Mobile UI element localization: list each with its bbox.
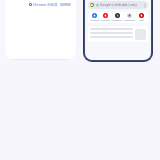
staticText: Facebook	[90, 19, 100, 22]
button[interactable]: Facebook	[89, 13, 100, 22]
button[interactable]: Wikipedia	[123, 13, 135, 22]
button[interactable]: Google search	[88, 1, 148, 9]
staticText: Chrome 浏览器	[33, 2, 58, 7]
button[interactable]: CNN	[135, 13, 147, 22]
button[interactable]: Google search	[85, 0, 151, 60]
other: Google search	[90, 3, 94, 7]
other: More options	[144, 3, 146, 8]
button[interactable]: YouTube	[100, 13, 111, 22]
button[interactable]	[88, 26, 148, 42]
button[interactable]: Amazon.com	[111, 13, 123, 22]
staticText: Amazon.com	[111, 19, 123, 22]
button[interactable]: Chrome	[28, 1, 72, 8]
other: Chrome	[29, 3, 32, 6]
staticText: 在 Google 中搜索或输入网址	[96, 3, 143, 7]
staticText: Wikipedia	[124, 19, 135, 22]
staticText: YouTube	[101, 19, 110, 22]
staticText: CNN	[139, 19, 144, 22]
button[interactable]: Chrome	[5, 0, 76, 60]
